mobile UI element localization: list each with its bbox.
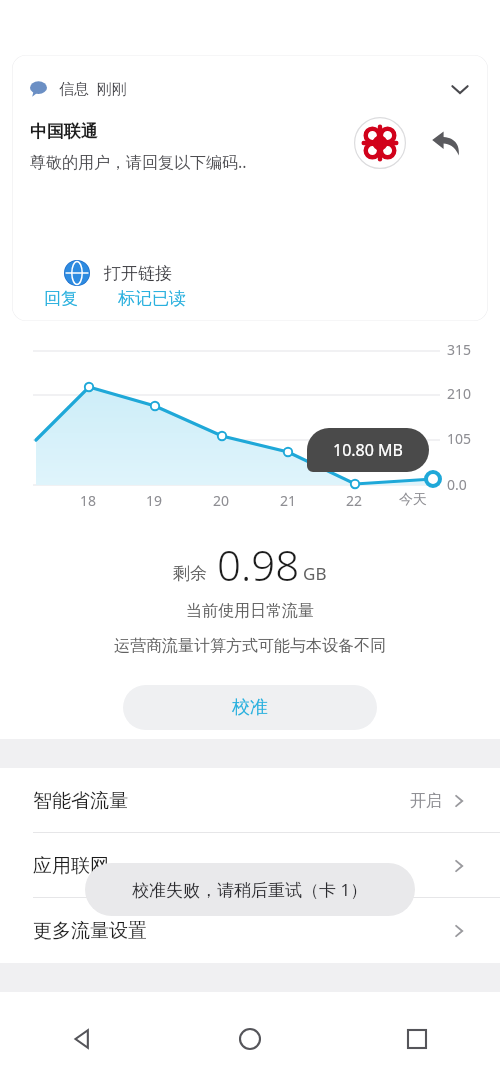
button[interactable]: Recents <box>333 1009 500 1069</box>
staticText: 信息 刚刚 <box>59 78 127 98</box>
staticText: 210 <box>447 384 472 403</box>
staticText: 回复 <box>44 288 78 309</box>
staticText: 21 <box>280 491 297 510</box>
staticText: 更多流量设置 <box>33 919 147 943</box>
staticText: 105 <box>447 429 472 448</box>
staticText: 18 <box>80 491 97 510</box>
staticText: 剩余 <box>173 563 207 584</box>
button[interactable]: Collapse <box>444 73 476 105</box>
button[interactable]: Home <box>166 1009 333 1069</box>
staticText: 校准失败，请稍后重试（卡 1） <box>132 878 368 901</box>
button[interactable]: 回复 <box>28 277 94 319</box>
button[interactable]: Reply <box>424 121 468 165</box>
staticText: 19 <box>146 491 163 510</box>
staticText: 20 <box>213 491 230 510</box>
staticText: 0.0 <box>447 475 467 494</box>
staticText: 10.80 MB <box>333 439 403 461</box>
staticText: 22 <box>346 491 363 510</box>
staticText: 今天 <box>399 491 427 509</box>
staticText: 更多 <box>413 1018 443 1037</box>
staticText: 运营商流量计算方式可能与本设备不同 <box>114 636 386 656</box>
staticText: 应用联网 <box>33 854 109 878</box>
button[interactable]: 更多流量设置 <box>0 898 500 963</box>
button[interactable]: 应用联网 <box>0 833 500 898</box>
staticText: 开启 <box>410 791 442 811</box>
staticText: 标记已读 <box>118 288 186 309</box>
button[interactable]: 信息 刚刚 <box>12 55 488 321</box>
staticText: 打开链接 <box>104 263 172 284</box>
staticText: GB <box>303 562 327 585</box>
staticText: 中国联通 <box>30 121 98 142</box>
button[interactable]: Back <box>0 1009 166 1069</box>
button[interactable]: 打开链接 <box>64 255 172 291</box>
staticText: 尊敬的用户，请回复以下编码.. <box>30 151 247 173</box>
staticText: 本月数据流量排行 <box>33 1015 185 1039</box>
button[interactable]: 智能省流量 <box>0 768 500 833</box>
staticText: 315 <box>447 340 472 359</box>
staticText: 智能省流量 <box>33 789 128 813</box>
button[interactable]: 标记已读 <box>104 277 200 319</box>
staticText: 校准 <box>232 696 268 719</box>
button[interactable]: 本月数据流量排行 <box>33 992 467 1062</box>
staticText: 0.98 <box>217 536 300 593</box>
button[interactable]: 校准 <box>123 685 377 730</box>
staticText: 当前使用日常流量 <box>186 601 314 621</box>
